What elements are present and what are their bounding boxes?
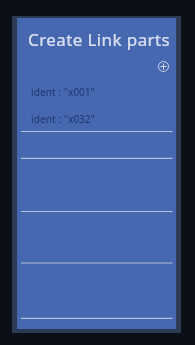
button[interactable]: Add link part <box>152 55 174 77</box>
button[interactable]: ident : "x032" <box>31 112 95 126</box>
staticText: Create Link parts <box>28 28 171 51</box>
staticText: ident : "x001" <box>31 85 95 99</box>
button[interactable]: ident : "x001" <box>31 85 95 99</box>
staticText: ident : "x032" <box>31 112 95 126</box>
